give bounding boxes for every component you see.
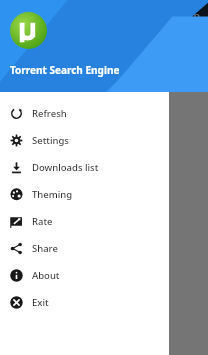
staticText: About bbox=[32, 269, 60, 282]
staticText: Searching torrent files on 96… bbox=[10, 117, 151, 131]
other: Refresh bbox=[10, 107, 23, 120]
other: Theming bbox=[10, 188, 23, 201]
staticText: sites bbox=[10, 89, 32, 103]
staticText: Help bbox=[176, 8, 200, 23]
staticText: Exit bbox=[32, 296, 49, 309]
button[interactable]: Theming bbox=[0, 181, 169, 208]
staticText: Settings bbox=[32, 134, 69, 147]
staticText: Share bbox=[32, 242, 58, 255]
other: Rate bbox=[10, 215, 23, 228]
other: Downloads list bbox=[10, 161, 23, 174]
staticText: The Pirate Bay – The Mirror bbox=[10, 151, 138, 165]
other: Settings bbox=[10, 134, 23, 147]
staticText: Downloads list bbox=[32, 161, 99, 174]
button[interactable]: Search bbox=[139, 40, 198, 62]
button[interactable]: Share bbox=[0, 235, 169, 262]
staticText: Torrent Search Engine bbox=[10, 63, 120, 77]
other: Exit bbox=[10, 296, 23, 309]
staticText: Select torrent search engine bbox=[10, 73, 143, 87]
staticText: Rate bbox=[32, 215, 53, 228]
button[interactable]: Exit bbox=[0, 289, 169, 316]
button[interactable]: Downloads list bbox=[0, 154, 169, 181]
other: About bbox=[10, 269, 23, 282]
button[interactable]: Refresh bbox=[0, 100, 169, 127]
button[interactable]: About bbox=[0, 262, 169, 289]
button[interactable]: Settings bbox=[0, 127, 169, 154]
staticText: Theming bbox=[32, 188, 73, 201]
button[interactable]: Help bbox=[168, 4, 208, 27]
button[interactable] bbox=[10, 40, 131, 62]
staticText: Refresh bbox=[32, 107, 67, 120]
other: Share bbox=[10, 242, 23, 255]
button[interactable]: Rate bbox=[0, 208, 169, 235]
